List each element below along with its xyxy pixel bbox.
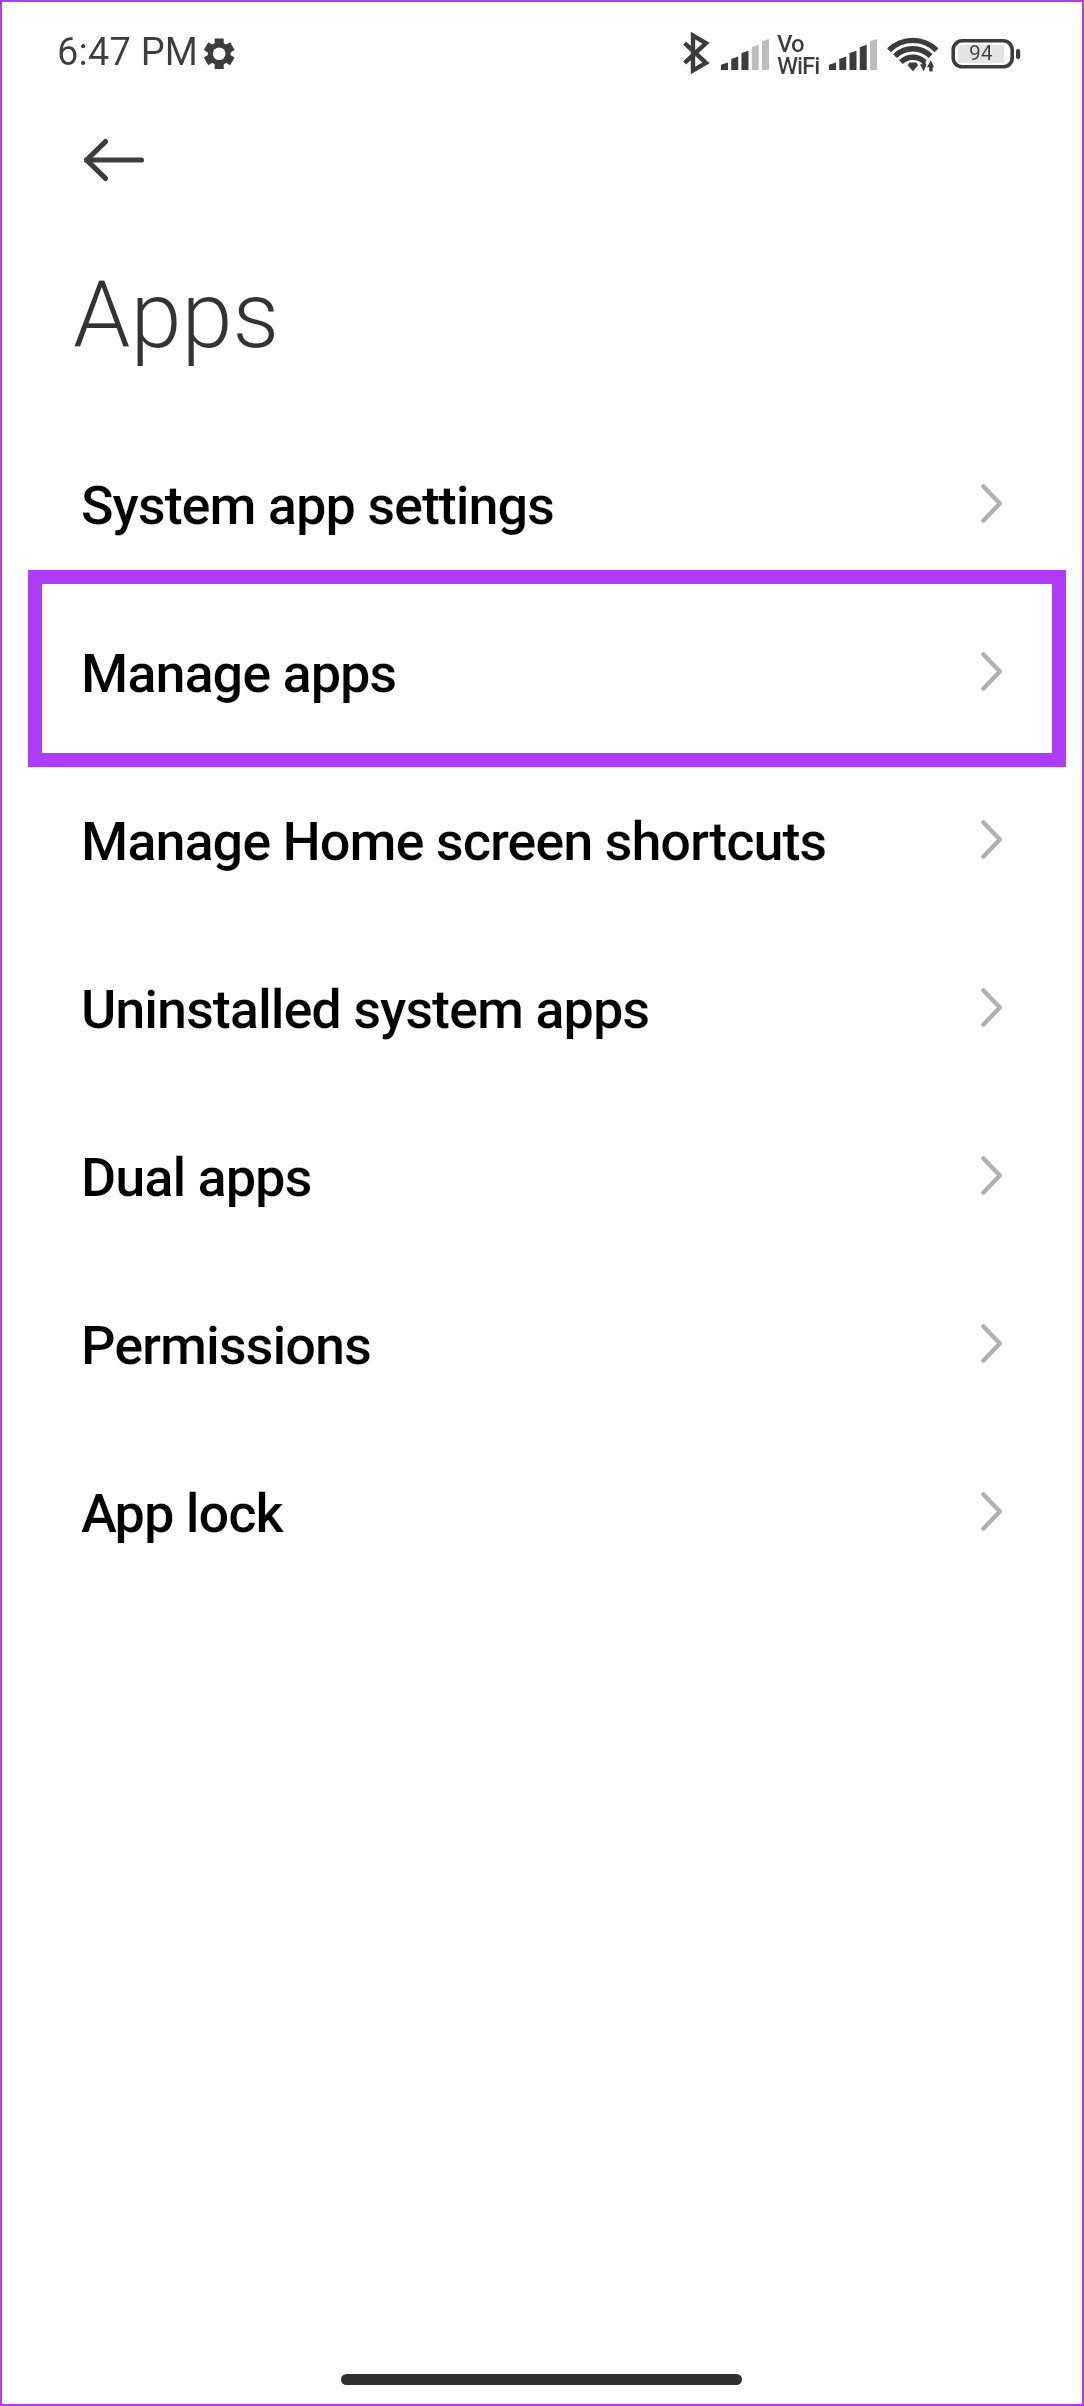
- staticText: Dual apps: [81, 1146, 312, 1209]
- staticText: Manage Home screen shortcuts: [81, 810, 827, 873]
- staticText: System app settings: [81, 474, 554, 537]
- staticText: WiFi: [777, 52, 820, 80]
- button[interactable]: Uninstalled system apps: [0, 920, 1084, 1088]
- button[interactable]: Dual apps: [0, 1088, 1084, 1256]
- button[interactable]: Back: [55, 101, 173, 219]
- staticText: Uninstalled system apps: [81, 978, 650, 1041]
- button[interactable]: App lock: [0, 1424, 1084, 1592]
- button[interactable]: Manage Home screen shortcuts: [0, 752, 1084, 920]
- staticText: Manage apps: [81, 642, 397, 705]
- staticText: App lock: [81, 1482, 283, 1545]
- button[interactable]: System app settings: [0, 416, 1084, 584]
- staticText: Apps: [73, 262, 280, 370]
- button[interactable]: Manage apps: [0, 584, 1084, 752]
- staticText: Permissions: [81, 1314, 371, 1377]
- staticText: Vo: [777, 30, 804, 58]
- staticText: 6:47 PM: [57, 30, 199, 75]
- staticText: 94: [969, 41, 993, 66]
- button[interactable]: Permissions: [0, 1256, 1084, 1424]
